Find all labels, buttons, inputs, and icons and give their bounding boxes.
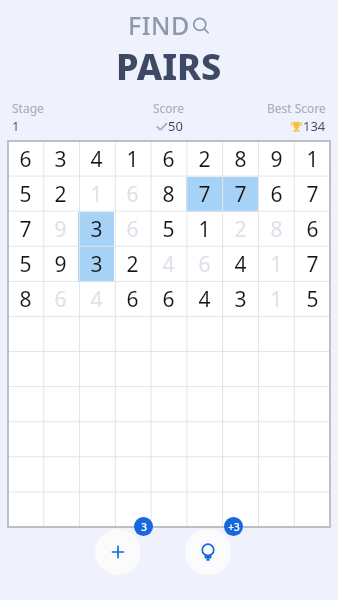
button[interactable] [43, 457, 78, 492]
button[interactable] [150, 387, 186, 422]
button[interactable] [186, 457, 222, 492]
button[interactable] [258, 317, 294, 352]
button[interactable] [114, 352, 150, 387]
button[interactable]: 6 [150, 141, 186, 177]
button[interactable] [78, 422, 114, 457]
button[interactable] [114, 457, 150, 492]
button[interactable]: 5 [8, 177, 43, 212]
button[interactable] [78, 317, 114, 352]
button[interactable] [222, 492, 258, 527]
button[interactable] [150, 317, 186, 352]
button[interactable]: 8 [150, 177, 186, 212]
button[interactable]: 1 [186, 212, 222, 247]
button[interactable] [78, 387, 114, 422]
button[interactable]: 1 [114, 141, 150, 177]
button[interactable] [186, 492, 222, 527]
button[interactable]: 2 [43, 177, 78, 212]
button[interactable]: 5 [294, 282, 330, 317]
button[interactable]: 6 [114, 212, 150, 247]
button[interactable] [294, 352, 330, 387]
button[interactable]: 2 [222, 212, 258, 247]
button[interactable] [294, 422, 330, 457]
button[interactable]: 3 [43, 141, 78, 177]
button[interactable] [150, 492, 186, 527]
button[interactable] [8, 387, 43, 422]
button[interactable] [294, 457, 330, 492]
button[interactable] [8, 317, 43, 352]
button[interactable]: 7 [294, 177, 330, 212]
button[interactable] [150, 457, 186, 492]
button[interactable] [114, 317, 150, 352]
button[interactable]: 3 [78, 212, 114, 247]
button[interactable] [43, 317, 78, 352]
button[interactable] [186, 422, 222, 457]
button[interactable] [258, 422, 294, 457]
button[interactable]: 5 [150, 212, 186, 247]
button[interactable] [8, 457, 43, 492]
button[interactable] [222, 422, 258, 457]
button[interactable] [8, 492, 43, 527]
button[interactable] [8, 422, 43, 457]
button[interactable] [222, 387, 258, 422]
button[interactable]: 9 [43, 212, 78, 247]
button[interactable] [43, 492, 78, 527]
button[interactable]: 4 [78, 141, 114, 177]
button[interactable]: 7 [8, 212, 43, 247]
button[interactable] [114, 492, 150, 527]
button[interactable]: 9 [258, 141, 294, 177]
button[interactable] [43, 422, 78, 457]
button[interactable]: 8 [222, 141, 258, 177]
button[interactable] [222, 352, 258, 387]
button[interactable]: 6 [114, 282, 150, 317]
button[interactable] [258, 352, 294, 387]
button[interactable] [222, 317, 258, 352]
button[interactable] [114, 422, 150, 457]
button[interactable]: 8 [258, 212, 294, 247]
button[interactable]: 7 [294, 247, 330, 282]
button[interactable] [78, 352, 114, 387]
button[interactable] [8, 352, 43, 387]
button[interactable] [294, 492, 330, 527]
button[interactable] [78, 492, 114, 527]
button[interactable]: 4 [78, 282, 114, 317]
button[interactable]: 6 [150, 282, 186, 317]
button[interactable]: 1 [78, 177, 114, 212]
button[interactable]: 1 [294, 141, 330, 177]
button[interactable]: Hint [185, 517, 243, 575]
button[interactable] [114, 387, 150, 422]
button[interactable]: 6 [258, 177, 294, 212]
button[interactable]: 6 [186, 247, 222, 282]
button[interactable] [222, 457, 258, 492]
button[interactable] [258, 387, 294, 422]
button[interactable]: 1 [258, 282, 294, 317]
button[interactable] [294, 387, 330, 422]
button[interactable]: Add row [95, 517, 153, 575]
button[interactable] [186, 317, 222, 352]
button[interactable] [78, 457, 114, 492]
button[interactable]: 4 [222, 247, 258, 282]
button[interactable] [150, 422, 186, 457]
button[interactable]: 1 [258, 247, 294, 282]
button[interactable]: 6 [43, 282, 78, 317]
button[interactable]: 6 [8, 141, 43, 177]
button[interactable] [43, 387, 78, 422]
button[interactable]: 3 [222, 282, 258, 317]
button[interactable]: 6 [114, 177, 150, 212]
button[interactable]: 3 [78, 247, 114, 282]
button[interactable] [186, 387, 222, 422]
button[interactable] [294, 317, 330, 352]
button[interactable] [258, 457, 294, 492]
button[interactable]: 6 [294, 212, 330, 247]
button[interactable] [258, 492, 294, 527]
button[interactable]: 9 [43, 247, 78, 282]
button[interactable]: 7 [222, 177, 258, 212]
button[interactable]: 8 [8, 282, 43, 317]
button[interactable]: 7 [186, 177, 222, 212]
button[interactable]: 4 [186, 282, 222, 317]
button[interactable]: 5 [8, 247, 43, 282]
button[interactable]: 4 [150, 247, 186, 282]
button[interactable] [43, 352, 78, 387]
button[interactable] [150, 352, 186, 387]
button[interactable]: 2 [186, 141, 222, 177]
button[interactable] [186, 352, 222, 387]
